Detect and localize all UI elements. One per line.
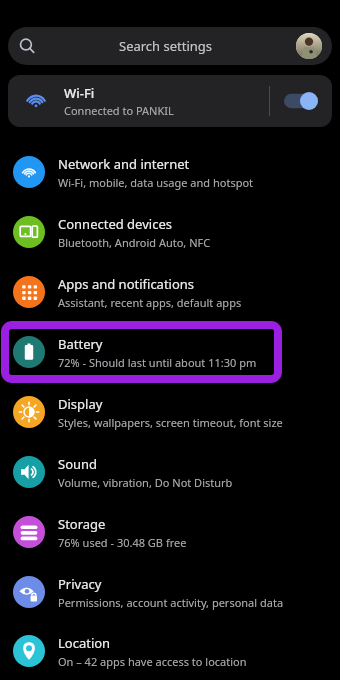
staticText: Location	[58, 634, 111, 652]
staticText: Wi-Fi, mobile, data usage and hotspot	[58, 175, 254, 190]
staticText: Connected devices	[58, 215, 172, 233]
staticText: Bluetooth, Android Auto, NFC	[58, 235, 211, 250]
staticText: Search settings	[119, 37, 213, 55]
staticText: Sound	[58, 455, 98, 473]
button[interactable]: Apps and notifications	[0, 262, 340, 322]
button[interactable]: Wi-Fi	[8, 75, 332, 127]
staticText: Assistant, recent apps, default apps	[58, 295, 242, 310]
button[interactable]: Network and internet	[0, 142, 340, 202]
staticText: 72% - Should last until about 11:30 pm	[58, 355, 257, 370]
other: Search	[18, 37, 36, 55]
staticText: Privacy	[58, 575, 102, 593]
staticText: Battery	[58, 335, 103, 353]
staticText: Display	[58, 395, 103, 413]
staticText: 76% used - 30.48 GB free	[58, 535, 187, 550]
staticText: On – 42 apps have access to location	[58, 654, 247, 669]
staticText: Permissions, account activity, personal …	[58, 595, 284, 610]
button[interactable]: Sound	[0, 442, 340, 502]
staticText: Volume, vibration, Do Not Disturb	[58, 475, 233, 490]
button[interactable]: Storage	[0, 502, 340, 562]
button[interactable]: Battery	[0, 322, 340, 382]
button[interactable]: Display	[0, 382, 340, 442]
button[interactable]: Search	[8, 27, 332, 65]
button[interactable]: Connected devices	[0, 202, 340, 262]
button[interactable]: Privacy	[0, 562, 340, 622]
button[interactable]: Account	[296, 33, 322, 59]
staticText: Connected to PANKIL	[64, 103, 174, 118]
staticText: Storage	[58, 515, 106, 533]
staticText: Styles, wallpapers, screen timeout, font…	[58, 415, 283, 430]
button[interactable]: Wi-Fi toggle	[270, 75, 332, 127]
button[interactable]: Location	[0, 622, 340, 680]
staticText: Network and internet	[58, 155, 190, 173]
staticText: Apps and notifications	[58, 275, 195, 293]
staticText: Wi-Fi	[64, 84, 95, 102]
